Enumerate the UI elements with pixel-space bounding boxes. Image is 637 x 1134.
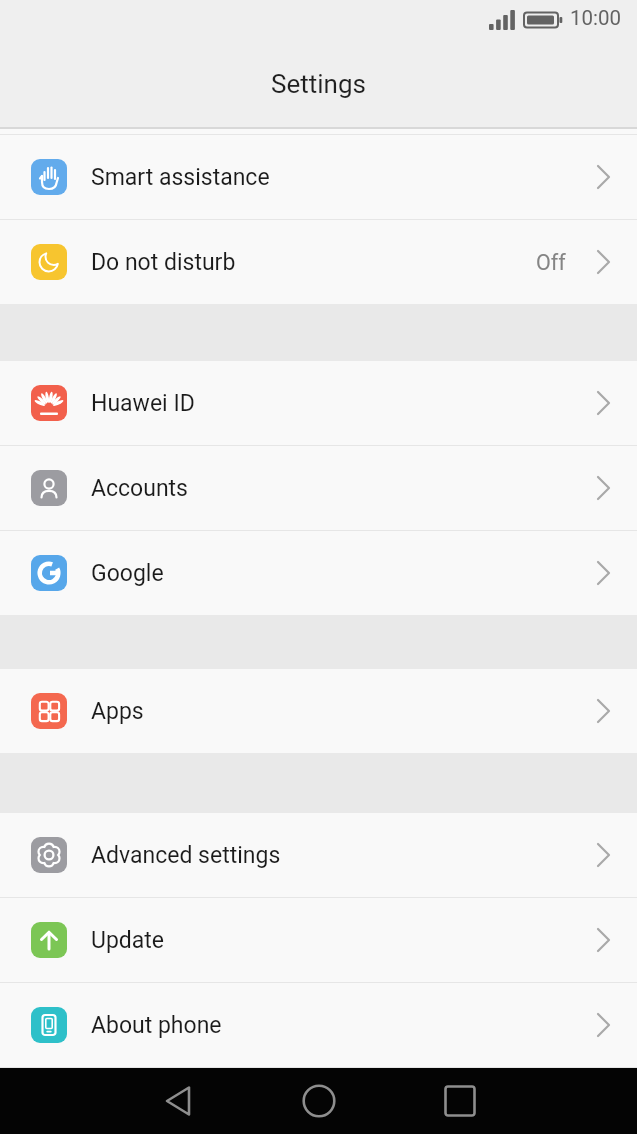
button[interactable]: Google	[0, 531, 637, 615]
staticText: About phone	[91, 1012, 222, 1039]
button[interactable]: Huawei ID	[0, 361, 637, 445]
staticText: 10:00	[570, 6, 622, 30]
staticText: Smart assistance	[91, 164, 270, 191]
staticText: Huawei ID	[91, 390, 195, 417]
button[interactable]	[248, 1068, 389, 1134]
staticText: Update	[91, 927, 165, 954]
staticText: Google	[91, 560, 164, 587]
staticText: Advanced settings	[91, 842, 281, 869]
staticText: Accounts	[91, 475, 188, 502]
button[interactable]	[107, 1068, 248, 1134]
button[interactable]: Apps	[0, 669, 637, 753]
button[interactable]	[389, 1068, 530, 1134]
button[interactable]: Update	[0, 898, 637, 982]
button[interactable]: Advanced settings	[0, 813, 637, 897]
button[interactable]: Smart assistance	[0, 135, 637, 219]
staticText: Off	[536, 250, 566, 275]
staticText: Do not disturb	[91, 249, 236, 276]
button[interactable]: Accounts	[0, 446, 637, 530]
staticText: Settings	[271, 69, 366, 99]
button[interactable]: About phone	[0, 983, 637, 1067]
button[interactable]: Do not disturb	[0, 220, 637, 304]
staticText: Apps	[91, 698, 144, 725]
